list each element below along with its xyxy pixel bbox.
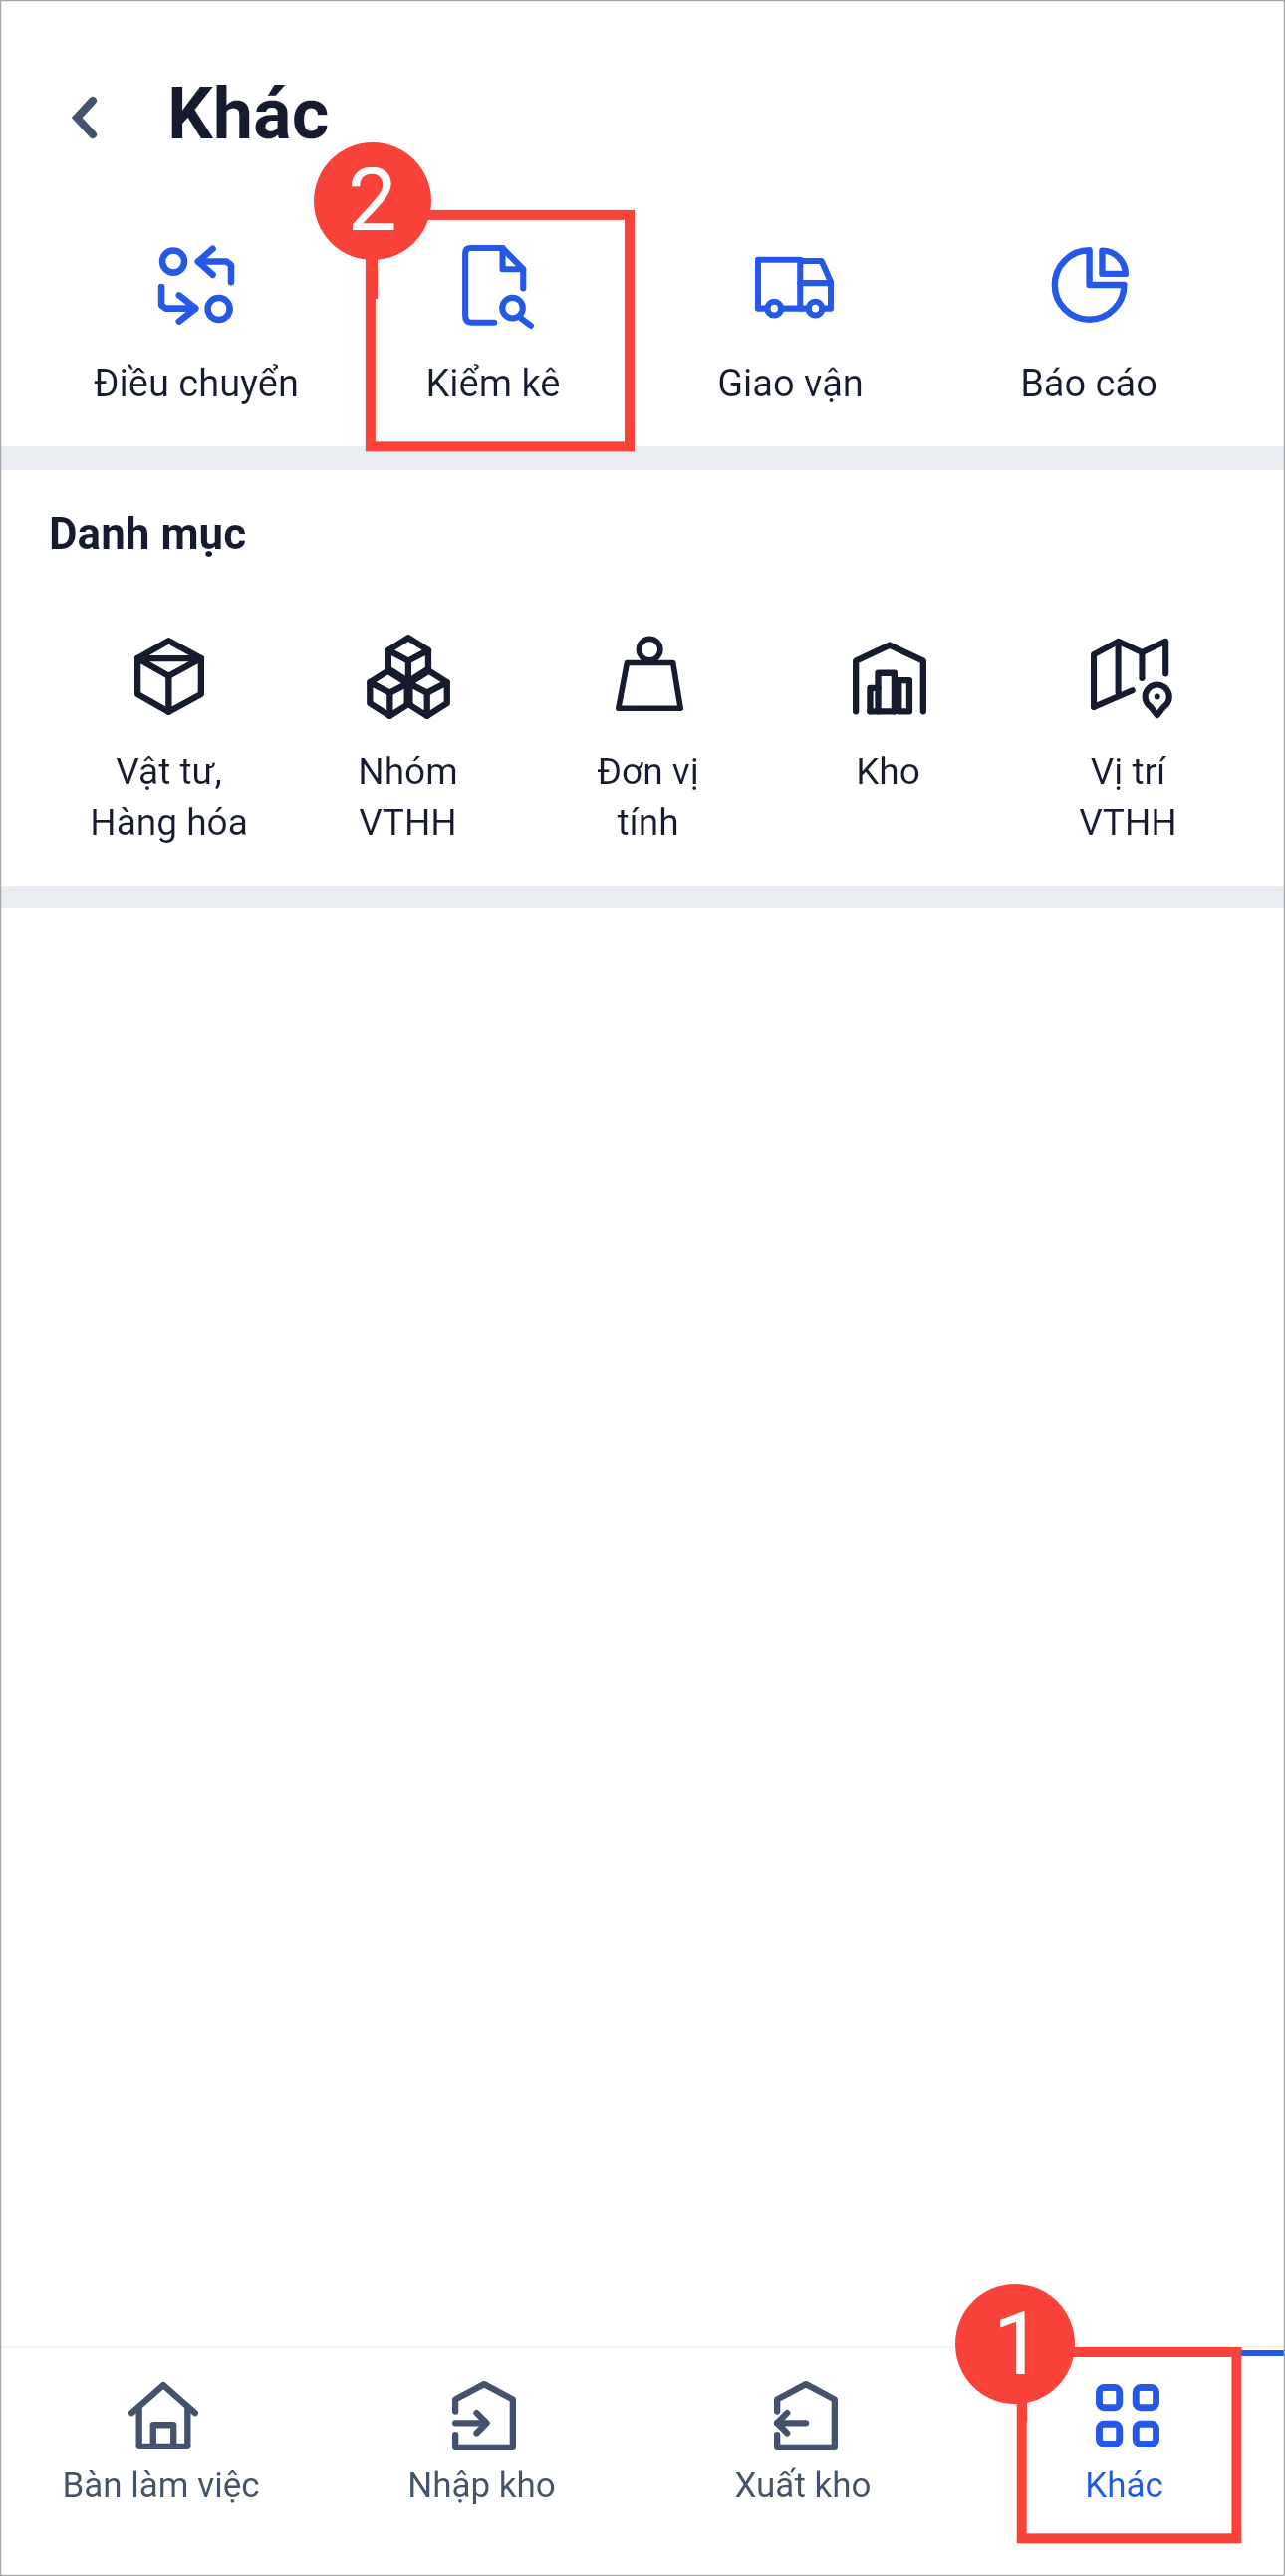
staticText: Vị trí VTHH xyxy=(1079,750,1177,844)
button[interactable]: Kiểm kê xyxy=(345,213,642,446)
button[interactable]: Kho xyxy=(768,634,1008,899)
button[interactable]: Vị trí VTHH xyxy=(1008,634,1248,899)
staticText: Báo cáo xyxy=(1020,362,1157,406)
button[interactable]: Vật tư, Hàng hóa xyxy=(49,634,288,899)
button[interactable]: Back xyxy=(40,74,110,161)
staticText: 2 xyxy=(348,148,397,251)
button[interactable]: Nhóm VTHH xyxy=(288,634,528,899)
button[interactable]: Báo cáo xyxy=(939,213,1237,446)
button[interactable]: Khác xyxy=(963,2348,1285,2568)
staticText: Giao vận xyxy=(717,362,864,406)
button[interactable]: Đơn vị tính xyxy=(528,634,768,899)
staticText: Khác xyxy=(1085,2465,1163,2506)
staticText: Đơn vị tính xyxy=(597,750,699,844)
staticText: Nhập kho xyxy=(407,2465,556,2506)
staticText: Kiểm kê xyxy=(425,362,561,406)
button[interactable]: Nhập kho xyxy=(321,2348,642,2568)
staticText: Xuất kho xyxy=(734,2465,872,2506)
staticText: Bàn làm việc xyxy=(62,2465,260,2506)
button[interactable]: Giao vận xyxy=(642,213,939,446)
staticText: Nhóm VTHH xyxy=(358,750,458,844)
staticText: Kho xyxy=(856,750,920,793)
button[interactable]: Điều chuyển xyxy=(48,213,345,446)
button[interactable]: Bàn làm việc xyxy=(0,2348,321,2568)
staticText: Vật tư, Hàng hóa xyxy=(90,750,248,844)
staticText: Khác xyxy=(167,72,330,155)
button[interactable]: Xuất kho xyxy=(642,2348,963,2568)
staticText: Điều chuyển xyxy=(94,362,299,406)
staticText: Danh mục xyxy=(49,508,247,560)
staticText: 1 xyxy=(993,2292,1043,2395)
